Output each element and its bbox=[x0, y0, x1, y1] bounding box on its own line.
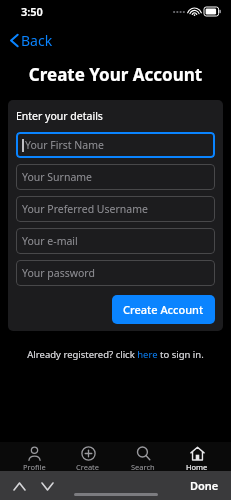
button[interactable]: Profile bbox=[12, 446, 56, 472]
staticText: Enter your details bbox=[16, 109, 103, 123]
staticText: Done bbox=[190, 478, 219, 493]
staticText: Your e-mail bbox=[22, 234, 78, 248]
button[interactable]: Already registered? click here to sign i… bbox=[0, 348, 231, 361]
button[interactable]: Next field bbox=[36, 475, 58, 497]
staticText: Home bbox=[186, 462, 208, 472]
staticText: Your First Name bbox=[25, 138, 104, 152]
staticText: Create Account bbox=[123, 302, 204, 317]
button[interactable]: Create Account bbox=[112, 295, 215, 324]
button[interactable]: Your password bbox=[16, 260, 215, 286]
staticText: Back bbox=[21, 31, 53, 50]
button[interactable]: Back bbox=[6, 28, 57, 53]
staticText: Create Your Account bbox=[0, 63, 231, 86]
button[interactable]: Your e-mail bbox=[16, 228, 215, 254]
staticText: Profile bbox=[23, 462, 46, 472]
button[interactable]: Previous field bbox=[8, 475, 30, 497]
button[interactable]: Your Preferred Username bbox=[16, 196, 215, 222]
staticText: Your password bbox=[22, 266, 95, 280]
button[interactable]: Home bbox=[175, 446, 219, 472]
button[interactable]: Your First Name bbox=[16, 132, 215, 158]
staticText: Already registered? click here to sign i… bbox=[27, 348, 204, 361]
staticText: Create bbox=[76, 462, 100, 472]
staticText: Your Surname bbox=[22, 170, 93, 184]
staticText: Your Preferred Username bbox=[22, 202, 148, 216]
staticText: 3:50 bbox=[21, 4, 43, 19]
button[interactable]: Create bbox=[66, 446, 110, 472]
staticText: Search bbox=[131, 462, 155, 472]
button[interactable]: Search bbox=[121, 446, 165, 472]
button[interactable]: Done bbox=[178, 472, 231, 499]
button[interactable]: Your Surname bbox=[16, 164, 215, 190]
